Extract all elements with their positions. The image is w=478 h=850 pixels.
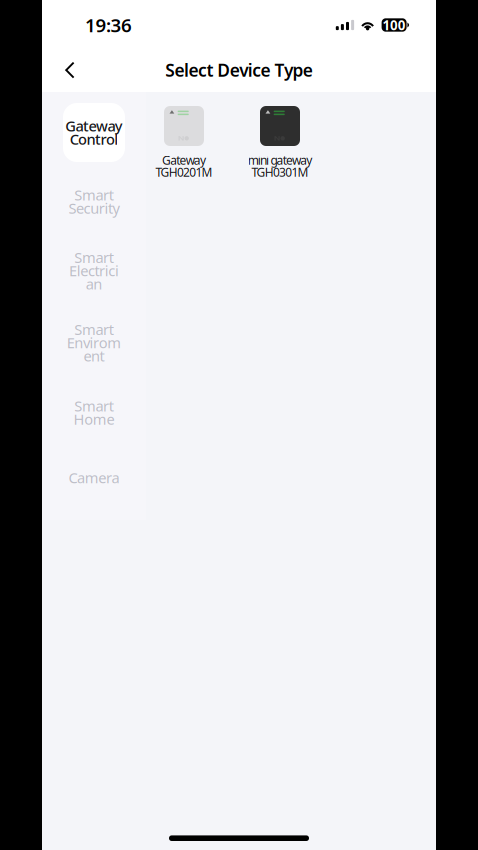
staticText: 19:36 xyxy=(85,13,132,37)
staticText: Smart xyxy=(74,248,114,267)
button[interactable]: Smart xyxy=(42,167,146,236)
staticText: 100 xyxy=(382,16,406,34)
button[interactable]: Camera xyxy=(42,443,146,512)
staticText: Home xyxy=(74,409,114,429)
button[interactable]: Smart xyxy=(42,236,146,305)
staticText: Security xyxy=(68,198,120,218)
button[interactable]: mini gateway xyxy=(232,106,328,177)
staticText: ent xyxy=(83,346,105,365)
staticText: Control xyxy=(70,129,118,149)
staticText: Smart xyxy=(74,396,114,416)
staticText: Camera xyxy=(68,468,119,487)
button[interactable]: Back xyxy=(50,49,90,91)
button[interactable]: Smart xyxy=(42,305,146,374)
button[interactable]: Smart xyxy=(42,374,146,443)
staticText: Electrici xyxy=(69,261,119,280)
staticText: Smart xyxy=(74,185,114,205)
staticText: mini gateway xyxy=(248,152,312,168)
button[interactable]: Gateway xyxy=(136,106,232,177)
staticText: Gateway xyxy=(162,152,206,168)
staticText: Smart xyxy=(74,320,114,339)
staticText: an xyxy=(86,274,102,293)
button[interactable]: Gateway xyxy=(42,98,146,167)
staticText: Envirom xyxy=(67,333,121,352)
staticText: TGH0301M xyxy=(251,164,309,180)
staticText: Gateway xyxy=(65,116,123,136)
staticText: TGH0201M xyxy=(155,164,213,180)
staticText: Select Device Type xyxy=(165,58,313,81)
